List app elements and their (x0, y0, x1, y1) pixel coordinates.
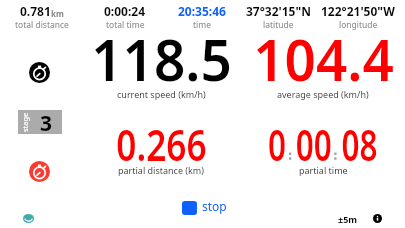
staticText: : (332, 114, 342, 174)
staticText: 00 (296, 114, 332, 174)
button[interactable]: Total timer (29, 62, 50, 83)
staticText: : (286, 114, 296, 174)
staticText: km (51, 8, 64, 19)
staticText: time (193, 19, 212, 31)
staticText: 20:35:46 (178, 3, 226, 19)
staticText: stop (202, 198, 227, 214)
button[interactable]: 37°32'15"N (238, 1, 318, 28)
staticText: longitude (339, 19, 378, 31)
button[interactable]: 0 (243, 114, 403, 178)
button[interactable]: stop (182, 200, 227, 216)
staticText: 104.4 (253, 19, 394, 98)
button[interactable]: ±5m (334, 211, 360, 225)
staticText: partial distance (km) (118, 164, 204, 176)
button[interactable]: 20:35:46 (162, 1, 242, 28)
button[interactable]: stage (18, 110, 62, 134)
staticText: partial time (299, 164, 348, 176)
staticText: total distance (15, 19, 69, 31)
button[interactable]: Info (373, 214, 382, 223)
staticText: total time (106, 19, 145, 31)
staticText: 3 (40, 109, 53, 133)
button[interactable]: 122°21'50"W (318, 1, 398, 28)
button[interactable]: 0:00:24 (85, 1, 165, 28)
staticText: 0.266 (116, 114, 207, 174)
button[interactable]: 0.781 (2, 1, 82, 28)
staticText: current speed (km/h) (117, 88, 206, 100)
button[interactable]: 118.5 (81, 19, 241, 102)
staticText: 118.5 (91, 19, 232, 98)
staticText: 0 (268, 114, 286, 174)
staticText: 37°32'15"N (246, 3, 311, 19)
staticText: ±5m (338, 213, 358, 225)
staticText: latitude (263, 19, 294, 31)
staticText: 0:00:24 (104, 3, 146, 19)
button[interactable]: 0.266 (81, 114, 241, 178)
button[interactable]: Partial timer (29, 161, 50, 182)
staticText: average speed (km/h) (277, 88, 369, 100)
button[interactable]: 104.4 (243, 19, 403, 102)
staticText: 122°21'50"W (321, 3, 395, 19)
staticText: 0.781 (20, 3, 51, 19)
staticText: stage (20, 112, 30, 132)
button[interactable]: GPS signal (23, 214, 34, 223)
staticText: 08 (342, 114, 378, 174)
